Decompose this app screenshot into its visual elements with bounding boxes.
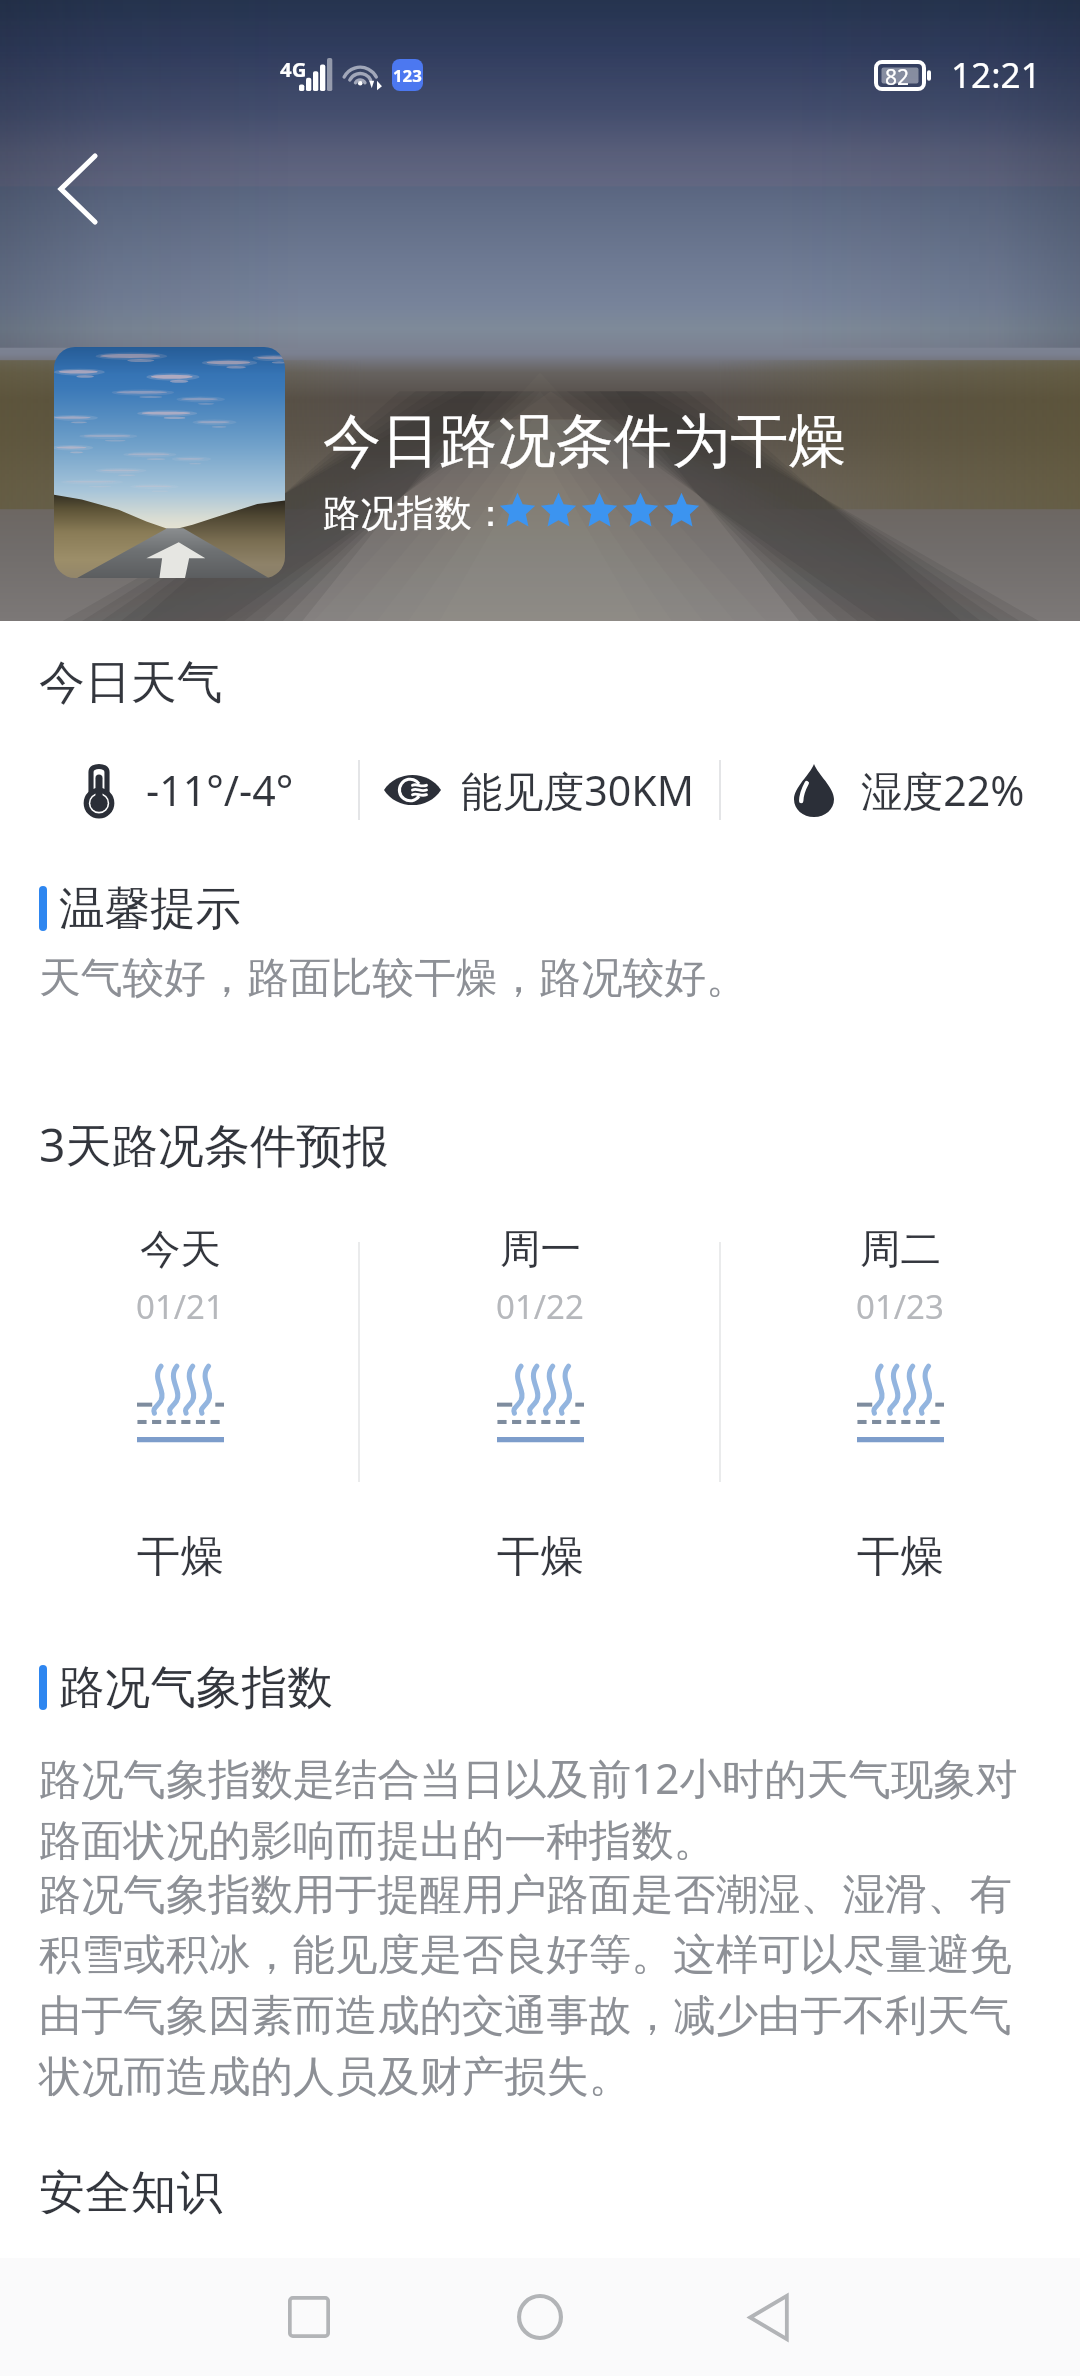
button[interactable]: Recent apps <box>243 2258 375 2376</box>
staticText: 湿度22% <box>861 762 1025 818</box>
staticText: -11°/-4° <box>146 762 294 818</box>
staticText: 路况气象指数 <box>59 1659 333 1716</box>
staticText: 01/23 <box>856 1284 944 1329</box>
button[interactable]: 周二 <box>720 1215 1080 1584</box>
staticText: 12:21 <box>951 50 1041 98</box>
staticText: 路况指数： <box>323 490 509 537</box>
staticText: 安全知识 <box>39 2164 223 2222</box>
staticText: 今日路况条件为干燥 <box>323 405 847 478</box>
button[interactable]: Back <box>702 2258 834 2376</box>
staticText: 天气较好，路面比较干燥，路况较好。 <box>39 952 748 1005</box>
button[interactable]: 今天 <box>0 1215 360 1584</box>
staticText: 01/21 <box>136 1284 224 1329</box>
staticText: 82 <box>885 63 910 92</box>
staticText: 周一 <box>500 1224 581 1275</box>
staticText: 3天路况条件预报 <box>39 1113 389 1176</box>
staticText: 干燥 <box>137 1529 224 1584</box>
staticText: 今日天气 <box>39 654 223 712</box>
staticText: 路况气象指数用于提醒用户路面是否潮湿、湿滑、有积雪或积冰，能见度是否良好等。这样… <box>39 1868 1044 2104</box>
staticText: 温馨提示 <box>59 880 242 937</box>
button[interactable]: Back <box>12 123 144 255</box>
staticText: 123 <box>393 64 422 87</box>
staticText: 干燥 <box>857 1529 944 1584</box>
staticText: 路况气象指数是结合当日以及前12小时的天气现象对路面状况的影响而提出的一种指数。 <box>39 1749 1044 1868</box>
staticText: 01/22 <box>496 1284 584 1329</box>
button[interactable]: 周一 <box>360 1215 720 1584</box>
staticText: 4G <box>280 55 307 83</box>
staticText: 能见度30KM <box>461 762 695 818</box>
staticText: 周二 <box>860 1224 941 1275</box>
staticText: 今天 <box>140 1224 221 1275</box>
staticText: 干燥 <box>497 1529 584 1584</box>
button[interactable]: Home <box>474 2258 606 2376</box>
